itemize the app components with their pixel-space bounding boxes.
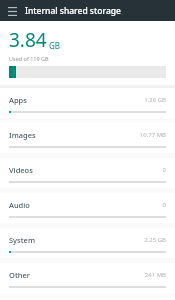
button[interactable]: Videos (0, 158, 175, 188)
button[interactable]: Other (0, 263, 175, 293)
staticText: Other (9, 270, 30, 280)
staticText: Videos (9, 165, 33, 175)
staticText: 3.84 (9, 27, 47, 53)
button[interactable]: System (0, 228, 175, 258)
staticText: Used of 119 GB (9, 55, 49, 62)
button[interactable]: Open navigation menu (5, 4, 19, 18)
button[interactable]: Audio (0, 193, 175, 223)
staticText: 2.25 GB (144, 236, 166, 244)
staticText: 0 (162, 201, 166, 209)
staticText: Internal shared storage (25, 5, 121, 17)
staticText: 241 MB (144, 271, 166, 279)
staticText: GB (49, 40, 61, 51)
staticText: 10.77 MB (139, 131, 166, 139)
staticText: Images (9, 130, 36, 140)
staticText: Audio (9, 200, 30, 210)
button[interactable]: Images (0, 123, 175, 153)
staticText: 0 (162, 166, 166, 174)
staticText: System (9, 235, 36, 245)
staticText: Apps (9, 95, 27, 105)
staticText: 1.26 GB (144, 96, 166, 104)
button[interactable]: Apps (0, 88, 175, 118)
